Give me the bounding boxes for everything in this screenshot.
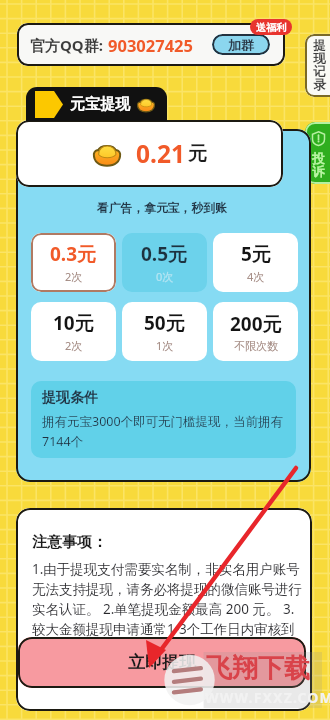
staticText: 2次 [65, 269, 83, 284]
staticText: 0.5元 [141, 241, 188, 267]
staticText: 加群 [228, 37, 254, 53]
staticText: 0.21 [136, 137, 185, 170]
staticText: 200元 [230, 311, 282, 337]
staticText: 立即提现 [128, 652, 196, 673]
staticText: 4次 [247, 269, 265, 284]
button[interactable]: 提现记录 [305, 34, 330, 97]
staticText: 看广告，拿元宝，秒到账 [97, 201, 227, 216]
staticText: 0.3元 [50, 241, 97, 267]
button[interactable]: 5元 [213, 233, 298, 292]
staticText: 投诉 [312, 151, 325, 179]
button[interactable]: 官方QQ群: [17, 23, 285, 66]
button[interactable]: 元宝提现 [26, 87, 167, 121]
staticText: 送福利 [256, 21, 286, 34]
staticText: 10元 [53, 310, 94, 336]
staticText: 5元 [241, 241, 271, 267]
button[interactable]: 200元 [213, 302, 298, 361]
button[interactable]: 投诉 [305, 122, 330, 184]
staticText: 2次 [65, 338, 83, 353]
staticText: WWW.FXXZ.COM [205, 688, 330, 707]
staticText: 提现条件 [42, 389, 98, 407]
button[interactable]: 50元 [122, 302, 207, 361]
staticText: 0次 [156, 269, 174, 284]
button[interactable]: 送福利 [250, 19, 292, 35]
button[interactable]: 加群 [212, 34, 270, 55]
staticText: 官方QQ群: [30, 35, 103, 55]
staticText: 注意事项： [32, 533, 107, 552]
button[interactable]: 0.5元 [122, 233, 207, 292]
staticText: 拥有元宝3000个即可无门槛提现，当前拥有7144个 [42, 413, 286, 450]
staticText: 飞翔下载 [206, 652, 310, 685]
button[interactable]: 立即提现 [18, 637, 306, 688]
button[interactable]: 0.3元 [31, 233, 116, 292]
staticText: 元 [188, 142, 207, 166]
staticText: 不限次数 [234, 339, 278, 353]
staticText: 元宝提现 [70, 95, 130, 114]
staticText: 1次 [156, 338, 174, 353]
staticText: 提现记录 [313, 38, 326, 92]
button[interactable]: 10元 [31, 302, 116, 361]
staticText: 50元 [144, 310, 185, 336]
staticText: 1.由于提现支付需要实名制，非实名用户账号无法支持提现，请务必将提现的微信账号进… [32, 560, 302, 658]
staticText: 903027425 [108, 34, 193, 56]
